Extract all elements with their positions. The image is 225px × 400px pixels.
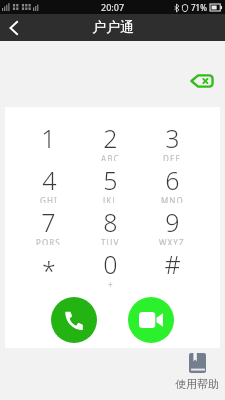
staticText: PQRS xyxy=(36,237,61,245)
staticText: + xyxy=(108,279,114,287)
staticText: JKL xyxy=(103,195,118,203)
staticText: 7 xyxy=(41,205,56,239)
button[interactable]: Delete xyxy=(185,64,219,98)
button[interactable]: 使用帮助 xyxy=(173,353,221,391)
staticText: 20:07 xyxy=(101,1,125,13)
button[interactable]: 2 xyxy=(79,121,141,163)
staticText: 4 xyxy=(42,163,57,197)
button[interactable]: Video call xyxy=(128,297,174,343)
button[interactable]: 6 xyxy=(141,163,203,205)
staticText: 0 xyxy=(103,247,118,281)
staticText: MNO xyxy=(161,195,184,203)
button[interactable]: 4 xyxy=(18,163,79,205)
staticText: DEF xyxy=(163,153,181,161)
staticText: 71% xyxy=(191,2,207,13)
staticText: 2 xyxy=(103,121,118,155)
staticText: 1 xyxy=(41,121,56,155)
staticText: 使用帮助 xyxy=(175,377,219,391)
button[interactable]: 1 xyxy=(18,121,79,155)
staticText: # xyxy=(164,247,181,281)
staticText: 8 xyxy=(103,205,118,239)
button[interactable]: 3 xyxy=(141,121,203,163)
staticText: 6 xyxy=(165,163,180,197)
button[interactable]: 7 xyxy=(18,205,79,247)
button[interactable]: 5 xyxy=(79,163,141,205)
button[interactable]: Back xyxy=(0,14,27,41)
staticText: 户户通 xyxy=(92,19,134,37)
staticText: 3 xyxy=(165,121,180,155)
staticText: * xyxy=(42,253,56,287)
button[interactable]: 0 xyxy=(79,247,141,289)
staticText: 9 xyxy=(165,205,180,239)
button[interactable]: * xyxy=(18,247,79,281)
staticText: ABC xyxy=(101,153,120,161)
button[interactable]: 8 xyxy=(79,205,141,247)
staticText: 5 xyxy=(103,163,118,197)
button[interactable]: # xyxy=(141,247,203,281)
button[interactable]: 9 xyxy=(141,205,203,247)
staticText: GHI xyxy=(40,195,58,203)
button[interactable]: Call xyxy=(51,297,97,343)
staticText: WXYZ xyxy=(159,237,185,245)
staticText: TUV xyxy=(101,237,120,245)
